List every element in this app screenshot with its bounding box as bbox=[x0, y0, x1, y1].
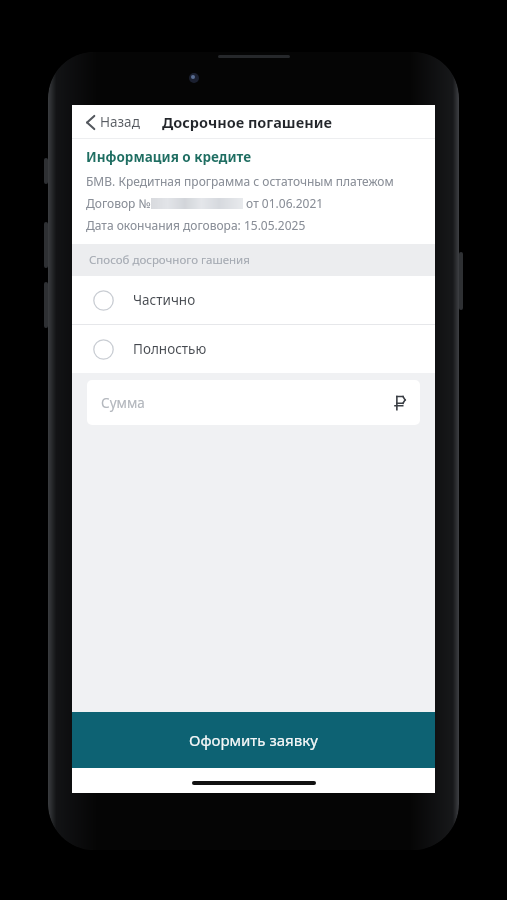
staticText: Договор № bbox=[86, 195, 151, 211]
staticText: БМВ. Кредитная программа с остаточным пл… bbox=[86, 173, 394, 189]
staticText: Информация о кредите bbox=[86, 148, 252, 166]
staticText: от 01.06.2021 bbox=[243, 195, 324, 211]
staticText: Сумма bbox=[101, 394, 145, 412]
button[interactable]: Оформить заявку bbox=[72, 712, 435, 768]
button[interactable]: Назад bbox=[82, 109, 144, 135]
staticText: Оформить заявку bbox=[189, 730, 318, 750]
staticText: Досрочное погашение bbox=[162, 112, 332, 132]
staticText: Полностью bbox=[133, 340, 207, 358]
staticText: Дата окончания договора: 15.05.2025 bbox=[86, 217, 306, 233]
staticText: Частично bbox=[133, 291, 196, 309]
button[interactable]: Частично bbox=[72, 276, 435, 324]
button[interactable]: Полностью bbox=[72, 325, 435, 373]
staticText: Назад bbox=[100, 113, 140, 131]
staticText: Способ досрочного гашения bbox=[89, 252, 250, 268]
button[interactable]: Сумма bbox=[87, 380, 420, 425]
